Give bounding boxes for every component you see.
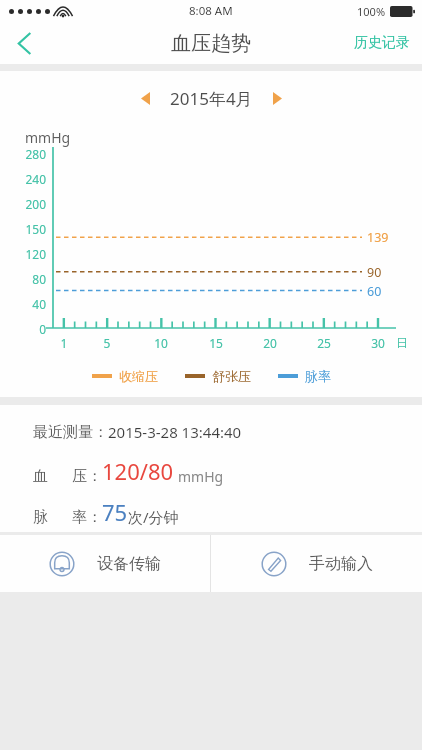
staticText: 60 (367, 283, 382, 300)
staticText: 2015年4月 (170, 87, 253, 110)
staticText: 120 (0, 246, 46, 262)
staticText: 25 (310, 335, 338, 351)
staticText: 120/80 (102, 456, 174, 486)
staticText: 脉率 (305, 368, 331, 384)
button[interactable]: Previous month (134, 85, 157, 112)
button[interactable]: 历史记录 (342, 22, 422, 64)
button[interactable]: Back (0, 22, 48, 64)
staticText: 280 (0, 146, 46, 162)
staticText: mmHg (178, 467, 224, 486)
staticText: 率： (72, 508, 102, 527)
staticText: 139 (367, 229, 389, 246)
staticText: 舒张压 (212, 368, 251, 384)
staticText: 日 (396, 335, 408, 350)
staticText: 次/分钟 (128, 507, 179, 527)
staticText: 2015-3-28 13:44:40 (108, 422, 242, 442)
staticText: 血 (33, 467, 48, 486)
staticText: 10 (147, 335, 175, 351)
staticText: 90 (367, 264, 382, 281)
staticText: 设备传输 (97, 554, 161, 574)
staticText: 100% (357, 4, 386, 19)
staticText: 脉 (33, 508, 48, 527)
staticText: 15 (202, 335, 230, 351)
staticText: 240 (0, 171, 46, 187)
staticText: 血压趋势 (171, 31, 251, 56)
staticText: 压： (72, 467, 102, 486)
staticText: 8:08 AM (189, 3, 233, 19)
staticText: 最近测量： (33, 423, 108, 442)
staticText: mmHg (25, 128, 71, 147)
staticText: 150 (0, 221, 46, 237)
staticText: 200 (0, 196, 46, 212)
button[interactable]: 手动输入 (211, 535, 422, 592)
staticText: 20 (256, 335, 284, 351)
button[interactable]: 设备传输 (0, 535, 210, 592)
staticText: 80 (0, 271, 46, 287)
staticText: 0 (0, 321, 46, 337)
button[interactable]: Next month (266, 85, 289, 112)
staticText: 40 (0, 296, 46, 312)
staticText: 收缩压 (119, 368, 158, 384)
staticText: 历史记录 (354, 34, 410, 52)
staticText: 5 (93, 335, 121, 351)
staticText: 75 (102, 497, 128, 527)
staticText: 1 (50, 335, 78, 351)
staticText: 手动输入 (309, 554, 373, 574)
staticText: 30 (364, 335, 392, 351)
